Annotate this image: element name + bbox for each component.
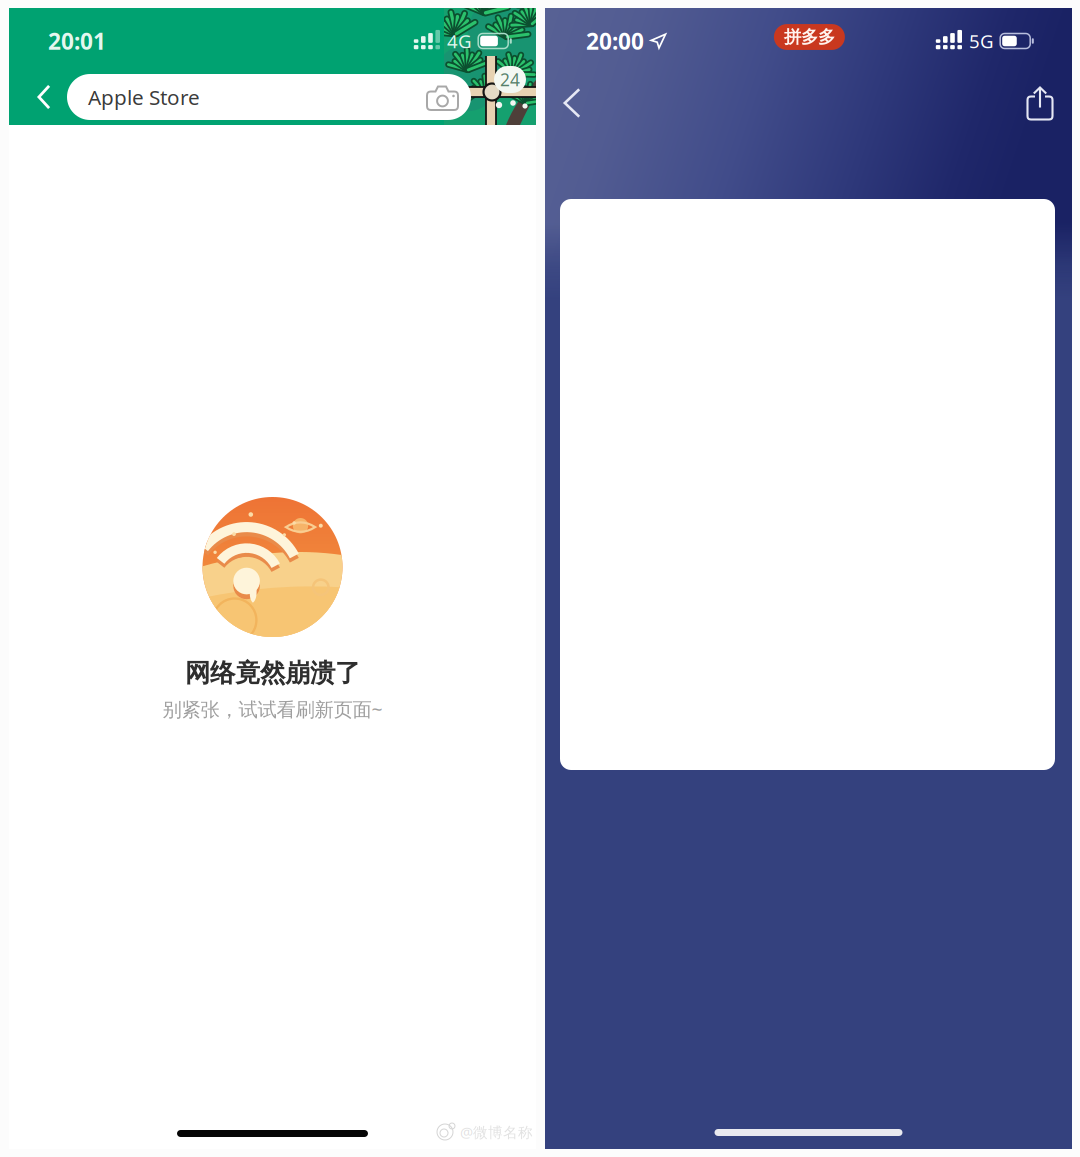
staticText: 20:01 <box>48 26 106 56</box>
staticText: 24 <box>500 68 520 91</box>
staticText: 20:00 <box>586 26 644 56</box>
button[interactable]: Back <box>21 74 67 120</box>
staticText: 拼多多 <box>784 26 835 48</box>
staticText: 4G <box>447 28 472 54</box>
button[interactable]: Apple Store <box>67 74 471 120</box>
staticText: 5G <box>969 28 994 54</box>
button[interactable]: Back <box>548 77 596 129</box>
staticText: 网络竟然崩溃了 <box>185 657 360 689</box>
staticText: Apple Store <box>88 83 200 111</box>
button[interactable]: Share <box>1010 77 1058 129</box>
staticText: 别紧张，试试看刷新页面~ <box>162 696 382 722</box>
staticText: @微博名称 <box>460 1122 533 1142</box>
